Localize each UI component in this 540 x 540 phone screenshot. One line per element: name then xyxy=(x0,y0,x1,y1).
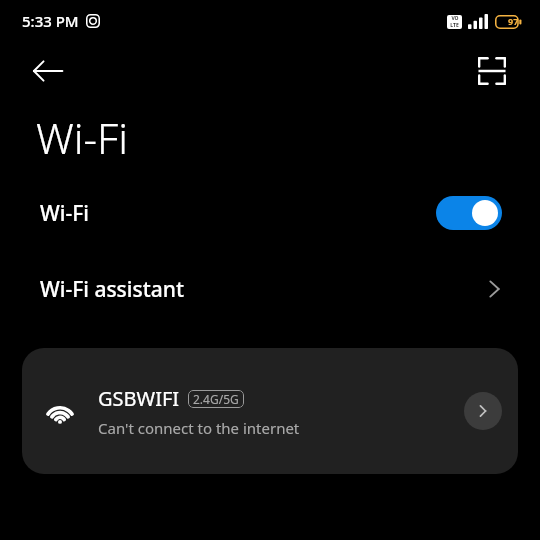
button[interactable]: Back xyxy=(26,49,70,93)
button[interactable]: GSBWIFI xyxy=(22,348,518,474)
staticText: 2.4G/5G xyxy=(193,391,239,407)
staticText: Can't connect to the internet xyxy=(98,418,300,438)
button[interactable]: Wi-Fi xyxy=(0,174,540,252)
staticText: 5:33 PM xyxy=(22,11,79,31)
staticText: Wi-Fi xyxy=(40,199,89,228)
staticText: Wi-Fi assistant xyxy=(40,275,184,304)
staticText: VO xyxy=(451,15,459,22)
staticText: 97 xyxy=(508,15,519,27)
button[interactable]: Network details xyxy=(464,392,502,430)
staticText: GSBWIFI xyxy=(98,385,180,412)
button[interactable]: Scan QR code xyxy=(470,49,514,93)
staticText: Wi-Fi xyxy=(36,109,128,166)
button[interactable]: Wi-Fi assistant xyxy=(0,252,540,326)
button[interactable]: Wi-Fi toggle xyxy=(436,196,502,230)
staticText: LTE xyxy=(450,22,459,29)
